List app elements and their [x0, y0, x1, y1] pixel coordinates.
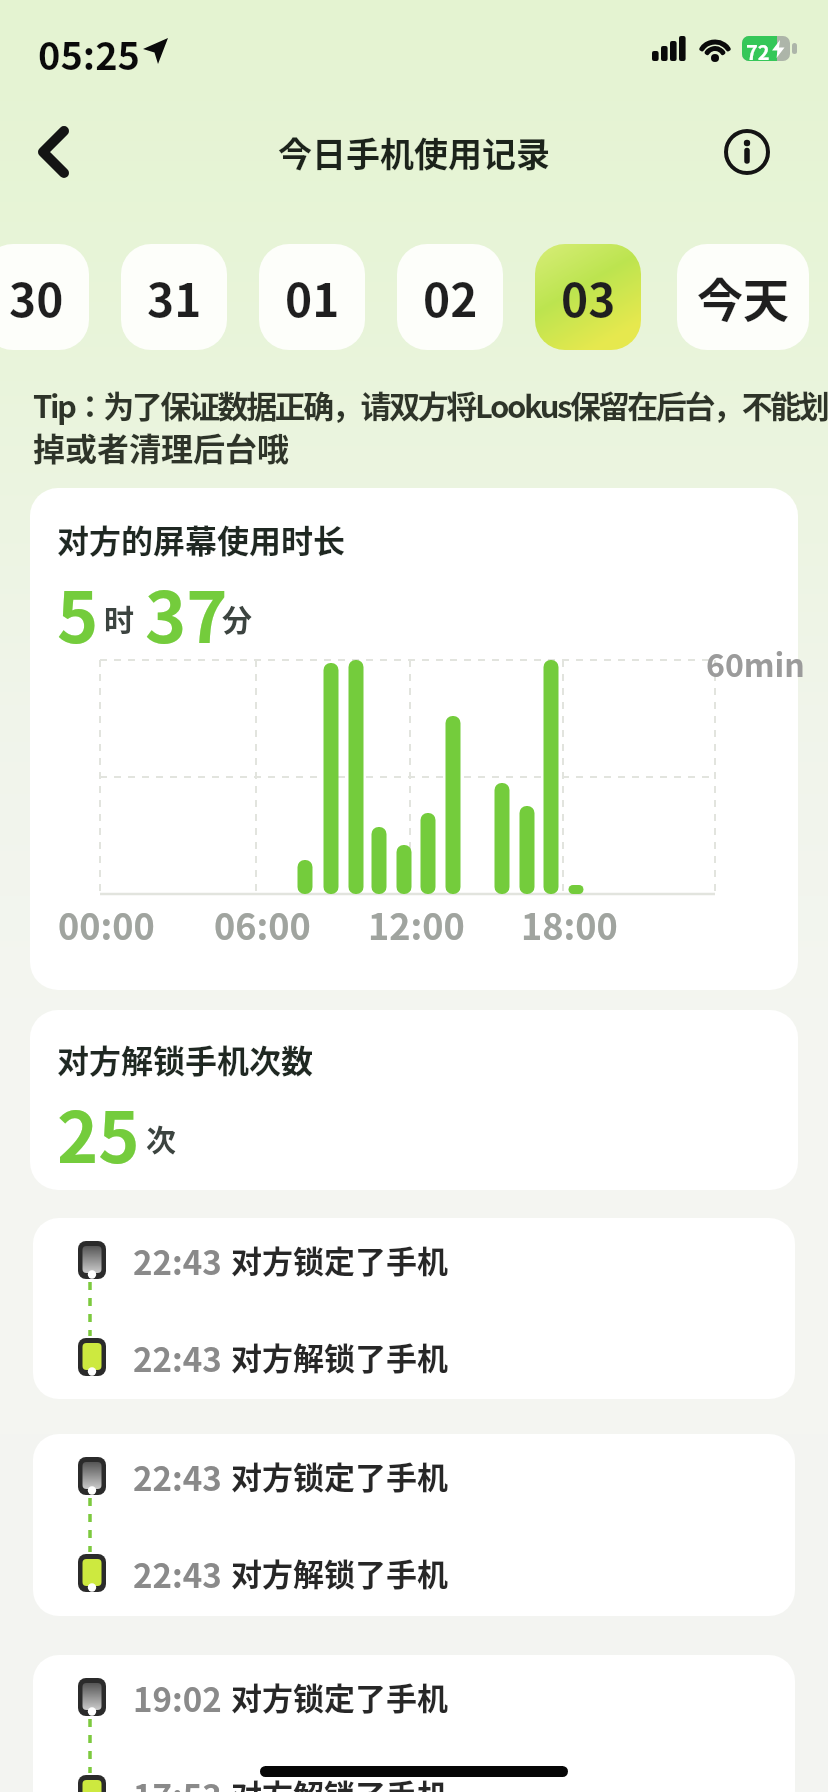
staticText: 今日手机使用记录 — [278, 128, 550, 177]
button[interactable] — [30, 488, 798, 990]
staticText: 分 — [222, 596, 252, 639]
staticText: 02 — [423, 264, 478, 331]
button[interactable] — [33, 1655, 795, 1792]
staticText: 对方锁定了手机 — [231, 1453, 448, 1498]
staticText: 时 — [104, 596, 134, 639]
button[interactable]: 02 — [397, 244, 503, 350]
staticText: 31 — [147, 264, 202, 331]
button[interactable] — [722, 127, 772, 177]
staticText: 对方锁定了手机 — [231, 1674, 448, 1719]
staticText: Tip：为了保证数据正确，请双方将Lookus保留在后台，不能划 — [33, 382, 828, 427]
staticText: 今天 — [697, 264, 789, 331]
staticText: 22:43 — [133, 1453, 222, 1501]
button[interactable]: 30 — [0, 244, 89, 350]
button[interactable] — [30, 1010, 798, 1190]
staticText: 对方解锁了手机 — [231, 1334, 448, 1379]
staticText: 次 — [146, 1116, 176, 1159]
staticText: 18:00 — [521, 898, 618, 950]
staticText: 03 — [561, 264, 616, 331]
staticText: 22:43 — [133, 1334, 222, 1382]
staticText: 05:25 — [38, 26, 141, 81]
staticText: 25 — [57, 1082, 140, 1183]
staticText: 06:00 — [214, 898, 311, 950]
staticText: 掉或者清理后台哦 — [33, 424, 290, 470]
staticText: 22:43 — [133, 1237, 222, 1285]
staticText: 对方锁定了手机 — [231, 1237, 448, 1282]
staticText: 37 — [145, 562, 228, 663]
staticText: 5 — [57, 562, 99, 663]
button[interactable] — [33, 1434, 795, 1616]
staticText: 对方的屏幕使用时长 — [57, 516, 346, 562]
button[interactable] — [33, 1218, 795, 1399]
button[interactable]: 31 — [121, 244, 227, 350]
staticText: 19:02 — [133, 1674, 222, 1722]
staticText: 60min — [706, 640, 805, 686]
staticText: 12:00 — [368, 898, 465, 950]
staticText: 00:00 — [58, 898, 155, 950]
staticText: 01 — [285, 264, 340, 331]
staticText: 30 — [9, 264, 64, 331]
button[interactable] — [28, 126, 80, 178]
button[interactable]: 03 — [535, 244, 641, 350]
staticText: 对方解锁了手机 — [231, 1771, 448, 1792]
button[interactable]: 01 — [259, 244, 365, 350]
button[interactable]: 今天 — [677, 244, 809, 350]
staticText: 17:53 — [133, 1771, 222, 1792]
staticText: 72 — [746, 37, 770, 61]
staticText: 对方解锁手机次数 — [57, 1036, 314, 1082]
staticText: 22:43 — [133, 1550, 222, 1598]
staticText: 对方解锁了手机 — [231, 1550, 448, 1595]
